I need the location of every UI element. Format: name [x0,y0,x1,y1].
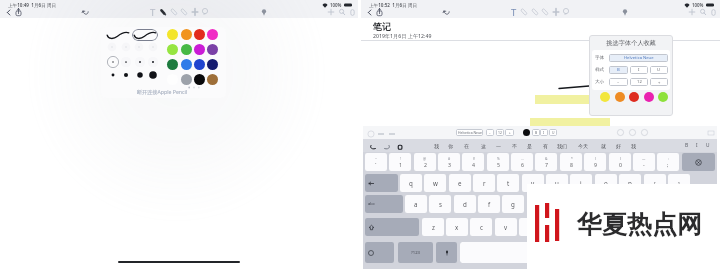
button[interactable]: Text tool [148,6,158,18]
button[interactable]: Move [551,6,561,18]
button[interactable]: ＋ [650,78,668,86]
button[interactable]: Helvetica Neue [456,129,483,136]
button[interactable]: Redo [383,143,391,151]
button[interactable]: Search [699,8,707,16]
button[interactable]: Undo [442,8,451,17]
button[interactable]: Lasso [200,6,210,18]
button[interactable]: 在 [462,139,470,152]
button[interactable]: Pen 2 [530,6,540,18]
button[interactable] [193,73,206,86]
button[interactable] [193,43,206,56]
button[interactable] [166,43,179,56]
button[interactable]: ＋ [505,129,514,136]
button[interactable]: x [446,218,468,236]
button[interactable]: i [570,174,592,192]
button[interactable]: B [609,66,628,74]
button[interactable]: 是 [525,139,533,152]
button[interactable]: [ [644,174,666,192]
button[interactable]: Pen 1 [519,6,529,18]
button[interactable]: k [575,195,597,213]
button[interactable]: Lasso [561,6,571,18]
button[interactable]: n [543,218,565,236]
button[interactable]: t [497,174,519,192]
button[interactable]: Text tool [509,6,519,18]
button[interactable]: Return [673,195,710,213]
button[interactable]: 一 [494,139,502,152]
button[interactable]: h [527,195,549,213]
button[interactable] [106,41,118,53]
button[interactable] [193,58,206,71]
button[interactable]: e [449,174,471,192]
button[interactable]: Location [260,8,268,17]
button[interactable]: 这 [479,139,487,152]
button[interactable]: － [609,78,628,86]
button[interactable]: Numbers [398,242,433,263]
button[interactable] [133,68,146,81]
button[interactable]: v [495,218,517,236]
button[interactable] [206,58,219,71]
button[interactable] [120,41,132,53]
button[interactable] [206,43,219,56]
button[interactable]: － [486,129,494,136]
button[interactable]: More [349,8,356,17]
button[interactable]: Indent [388,130,396,138]
button[interactable]: U [703,139,713,152]
button[interactable]: I [630,66,648,74]
button[interactable] [657,91,669,103]
button[interactable]: 好 [614,139,622,152]
button[interactable]: Shift right [665,218,719,236]
button[interactable]: Search [338,8,346,16]
button[interactable]: Pen 2 [169,6,179,18]
button[interactable]: — [633,153,655,171]
button[interactable] [106,68,119,81]
button[interactable]: More [710,8,717,17]
button[interactable]: Shift [365,218,419,236]
button[interactable] [147,41,159,53]
button[interactable]: # [438,153,460,171]
button[interactable] [193,28,206,41]
button[interactable]: : [657,153,679,171]
button[interactable] [599,91,611,103]
button[interactable]: Tab [365,174,398,192]
button[interactable]: / [641,218,663,236]
button[interactable]: d [454,195,476,213]
button[interactable]: 12 [630,78,648,86]
button[interactable]: z [422,218,444,236]
button[interactable]: Align 2 [629,129,636,136]
button[interactable]: 有 [541,139,549,152]
button[interactable]: B [532,129,540,136]
button[interactable]: Pen 1 [158,6,168,18]
button[interactable]: y [522,174,544,192]
button[interactable]: ] [668,174,690,192]
button[interactable]: * [560,153,582,171]
button[interactable] [180,43,193,56]
button[interactable] [133,41,145,53]
button[interactable]: U [650,66,668,74]
button[interactable]: 断开连接Apple Pencil [123,88,201,95]
button[interactable] [614,91,626,103]
button[interactable]: Add [688,8,696,16]
button[interactable]: m [568,218,590,236]
button[interactable]: f [478,195,500,213]
button[interactable] [166,28,179,41]
button[interactable]: Helvetica Neue [609,54,668,62]
button[interactable]: Hide panel [708,131,714,135]
button[interactable]: ' [649,195,671,213]
button[interactable] [133,55,146,68]
button[interactable]: Undo [369,143,377,151]
button[interactable]: B [682,139,692,152]
button[interactable] [180,73,193,86]
button[interactable]: 就 [599,139,607,152]
button[interactable]: Location [621,8,629,17]
button[interactable]: j [551,195,573,213]
button[interactable] [643,91,655,103]
button[interactable]: 12 [496,129,504,136]
button[interactable]: Text colour [523,129,530,136]
button[interactable]: Paste [396,143,404,151]
button[interactable] [146,55,159,68]
button[interactable] [180,58,193,71]
button[interactable]: Pen 3 [540,6,550,18]
